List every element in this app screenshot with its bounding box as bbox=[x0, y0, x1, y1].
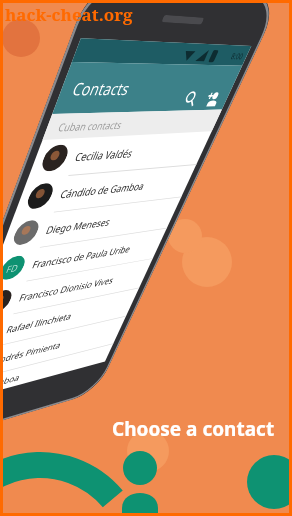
button[interactable]: Add contact bbox=[202, 89, 224, 108]
button[interactable]: Search bbox=[180, 89, 203, 109]
staticText: hack-cheat.org bbox=[5, 3, 133, 26]
staticText: Gamboa bbox=[0, 371, 23, 392]
staticText: Andrés Pimienta bbox=[0, 339, 63, 366]
button[interactable]: Gamboa bbox=[0, 344, 113, 406]
staticText: Choose a contact bbox=[112, 416, 275, 442]
staticText: Cecilia Valdés bbox=[73, 146, 135, 164]
staticText: Diego Meneses bbox=[44, 215, 113, 237]
staticText: Cándido de Gamboa bbox=[58, 179, 147, 201]
button[interactable]: Francisco Dionisio Vives bbox=[0, 259, 153, 322]
staticText: Rafael Ilinchieta bbox=[5, 310, 74, 336]
button[interactable]: Andrés Pimienta bbox=[0, 316, 126, 385]
button[interactable]: FD bbox=[0, 229, 167, 288]
staticText: Cuban contacts bbox=[56, 118, 125, 134]
staticText: Contacts bbox=[69, 77, 134, 101]
button[interactable]: Diego Meneses bbox=[0, 197, 181, 253]
button[interactable]: Cándido de Gamboa bbox=[14, 165, 196, 216]
staticText: FD bbox=[4, 261, 20, 275]
button[interactable]: Cecilia Valdés bbox=[28, 131, 212, 178]
button[interactable]: Rafael Ilinchieta bbox=[0, 288, 139, 354]
staticText: Francisco de Paula Uribe bbox=[30, 242, 133, 271]
staticText: 8:00 bbox=[229, 50, 245, 61]
staticText: Francisco Dionisio Vives bbox=[17, 274, 116, 304]
